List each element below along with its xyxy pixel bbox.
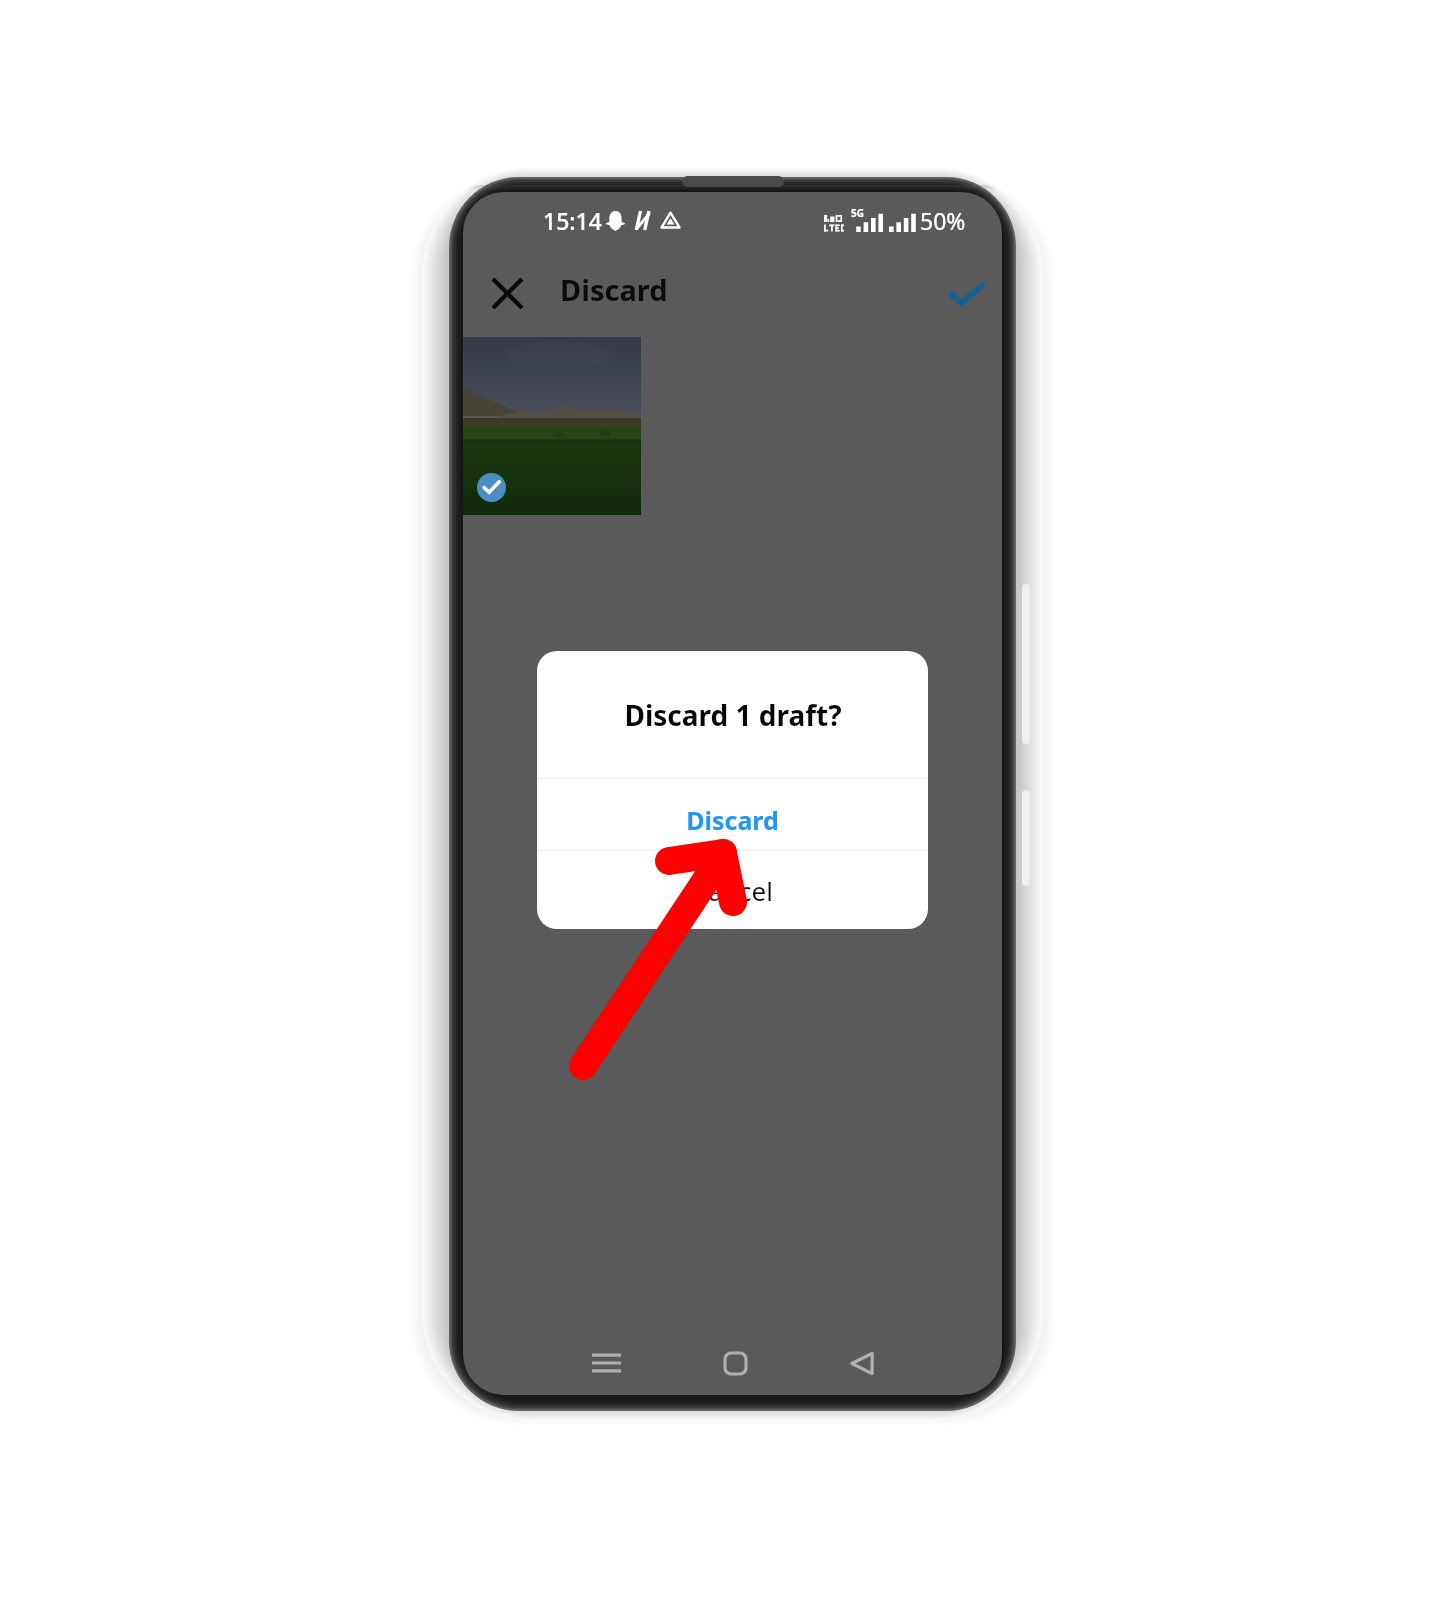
button[interactable]: Discard	[537, 779, 928, 850]
button[interactable]: Back	[830, 1331, 894, 1395]
staticText: Cancel	[692, 873, 773, 908]
staticText: 5G	[851, 206, 864, 220]
button[interactable]: Recent apps	[574, 1331, 638, 1395]
staticText: Discard	[560, 270, 668, 309]
button[interactable]: Home	[703, 1331, 767, 1395]
button[interactable]: Close	[478, 264, 536, 322]
button[interactable]: Selected draft photo	[463, 337, 641, 515]
staticText: Discard 1 draft?	[624, 696, 842, 734]
button[interactable]: Cancel	[537, 851, 928, 929]
staticText: 50%	[920, 205, 966, 236]
staticText: Discard	[686, 803, 779, 837]
button[interactable]: Done	[943, 269, 991, 317]
staticText: 15:14	[543, 205, 602, 236]
